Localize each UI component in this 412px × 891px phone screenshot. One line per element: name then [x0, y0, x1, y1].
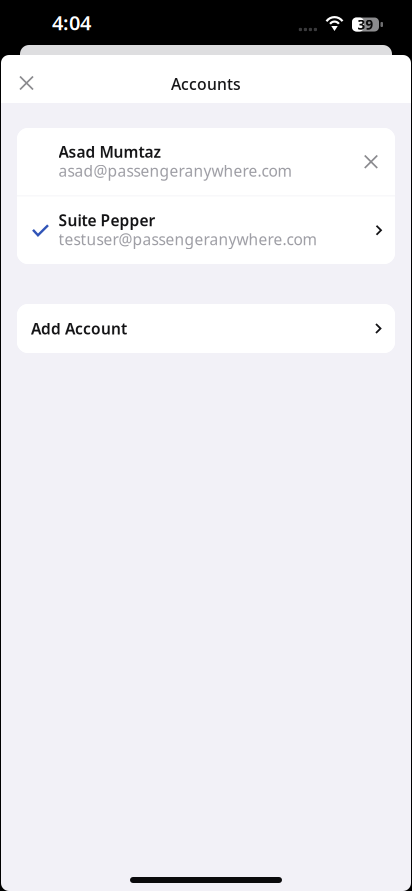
- button[interactable]: Suite Pepper: [17, 196, 395, 264]
- button[interactable]: Close: [4, 61, 48, 105]
- button[interactable]: Remove account: [351, 140, 391, 184]
- staticText: 39: [357, 16, 373, 33]
- staticText: Asad Mumtaz: [58, 141, 160, 162]
- staticText: Suite Pepper: [58, 210, 155, 231]
- staticText: testuser@passengeranywhere.com: [58, 229, 316, 250]
- button[interactable]: Asad Mumtaz: [17, 128, 395, 195]
- button[interactable]: Add Account: [1, 304, 411, 353]
- staticText: Accounts: [171, 73, 241, 95]
- staticText: asad@passengeranywhere.com: [58, 160, 291, 181]
- staticText: 4:04: [52, 9, 91, 36]
- staticText: Add Account: [31, 318, 127, 339]
